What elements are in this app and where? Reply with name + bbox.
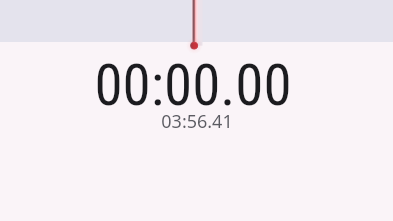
staticText: 00:00.00	[94, 52, 292, 119]
staticText: 03:56.41	[161, 109, 233, 134]
